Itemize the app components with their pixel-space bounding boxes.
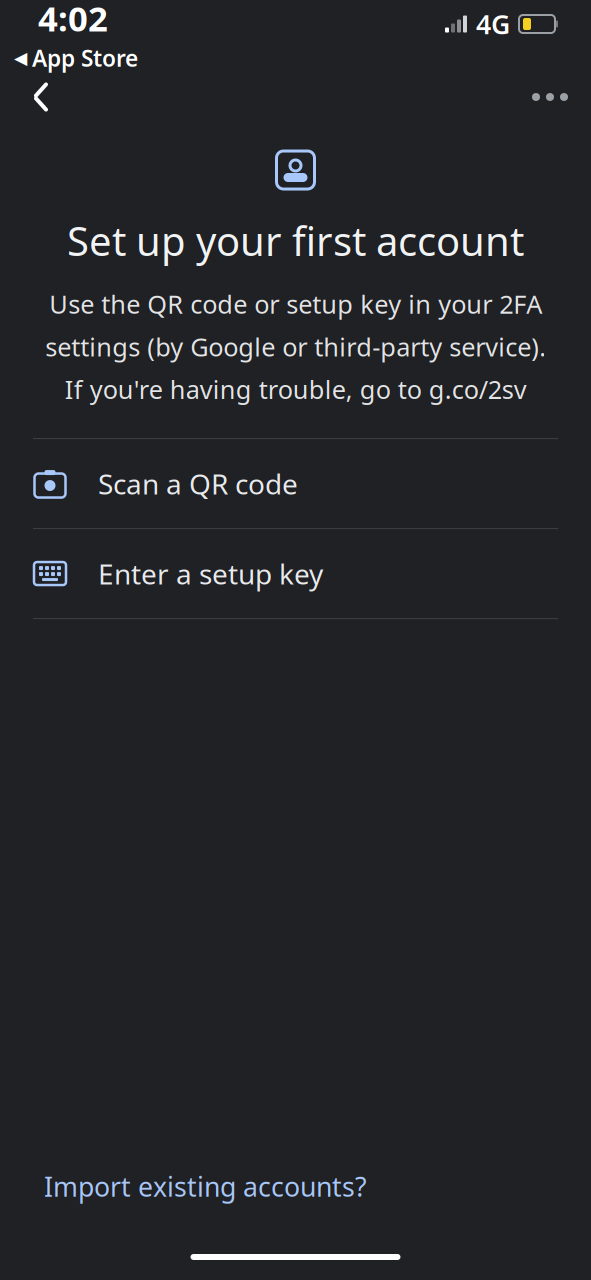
staticText: Use the QR code or setup key in your 2FA… <box>45 287 546 406</box>
button[interactable]: Scan a QR code <box>0 439 591 528</box>
staticText: Scan a QR code <box>98 465 298 502</box>
staticText: Set up your first account <box>67 214 524 267</box>
staticText: Import existing accounts? <box>44 1169 367 1204</box>
staticText: ◀ <box>14 48 27 68</box>
button[interactable]: Enter a setup key <box>0 529 591 618</box>
staticText: App Store <box>32 43 138 73</box>
staticText: 4:02 <box>38 0 108 41</box>
button[interactable]: Back <box>8 69 74 125</box>
staticText: Enter a setup key <box>98 555 323 592</box>
button[interactable]: More options <box>517 69 583 125</box>
button[interactable]: Import existing accounts? <box>44 1159 367 1214</box>
staticText: 4G <box>476 6 510 42</box>
